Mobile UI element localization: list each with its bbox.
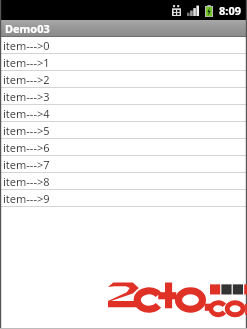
staticText: item--->3 [3, 89, 50, 104]
staticText: item--->6 [3, 140, 50, 155]
button[interactable]: item--->2 [0, 71, 247, 88]
button[interactable]: item--->3 [0, 88, 247, 105]
staticText: item--->1 [3, 55, 50, 70]
staticText: Demo03 [5, 21, 50, 36]
button[interactable]: item--->8 [0, 173, 247, 190]
button[interactable]: item--->5 [0, 122, 247, 139]
staticText: item--->9 [3, 191, 50, 206]
staticText: item--->5 [3, 123, 50, 138]
staticText: 8:09 [219, 3, 241, 18]
staticText: item--->0 [3, 38, 50, 53]
button[interactable]: Demo03 [0, 20, 247, 37]
button[interactable]: item--->7 [0, 156, 247, 173]
button[interactable]: item--->0 [0, 37, 247, 54]
button[interactable]: item--->6 [0, 139, 247, 156]
button[interactable]: item--->4 [0, 105, 247, 122]
button[interactable]: item--->9 [0, 190, 247, 207]
staticText: item--->8 [3, 174, 50, 189]
staticText: item--->4 [3, 106, 50, 121]
staticText: item--->7 [3, 157, 50, 172]
button[interactable]: item--->1 [0, 54, 247, 71]
staticText: item--->2 [3, 72, 50, 87]
